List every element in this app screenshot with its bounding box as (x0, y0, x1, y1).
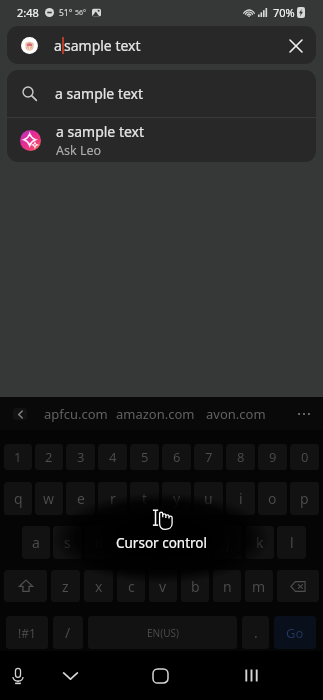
button[interactable]: amazon.com (116, 405, 195, 423)
button[interactable]: n (213, 570, 241, 602)
button[interactable]: z (51, 570, 80, 602)
button[interactable]: 1 (4, 444, 32, 470)
button[interactable]: r (98, 482, 127, 515)
button[interactable]: m (245, 570, 273, 602)
button[interactable]: q (4, 482, 32, 515)
button[interactable]: y (162, 482, 191, 515)
staticText: 9 (269, 448, 277, 466)
staticText: e (77, 489, 85, 508)
staticText: g (159, 533, 168, 552)
button[interactable]: 9 (258, 444, 287, 470)
staticText: h (191, 533, 200, 552)
staticText: 0 (301, 448, 309, 466)
staticText: a sample text (56, 122, 145, 141)
staticText: v (159, 577, 167, 596)
button[interactable]: 6 (162, 444, 191, 470)
staticText: o (268, 489, 277, 508)
button[interactable]: EN(US) (88, 616, 237, 649)
button[interactable]: f (117, 526, 146, 559)
button[interactable]: a sample text (7, 118, 316, 162)
staticText: 2:48 (17, 5, 39, 20)
staticText: Go (286, 624, 304, 642)
staticText: f (129, 533, 134, 552)
button[interactable]: u (194, 482, 223, 515)
button[interactable]: h (181, 526, 210, 559)
button[interactable]: e (66, 482, 95, 515)
button[interactable]: avon.com (206, 405, 266, 423)
button[interactable]: o (258, 482, 287, 515)
button[interactable]: / (53, 616, 83, 649)
button[interactable]: More options (291, 397, 317, 430)
button[interactable]: p (290, 482, 319, 515)
button[interactable]: x (84, 570, 113, 602)
staticText: z (62, 577, 69, 596)
staticText: 56° (75, 8, 87, 18)
button[interactable]: v (149, 570, 177, 602)
button[interactable]: Backspace (277, 570, 319, 602)
button[interactable]: a sample text (7, 70, 316, 117)
staticText: Cursor control (116, 534, 207, 552)
staticText: p (300, 489, 309, 508)
button[interactable]: Clear search (277, 26, 315, 64)
button[interactable]: apfcu.com (44, 405, 108, 423)
staticText: q (14, 489, 23, 508)
staticText: sample text (64, 36, 141, 55)
button[interactable]: l (277, 526, 306, 559)
staticText: y (173, 489, 181, 508)
staticText: 1 (14, 448, 22, 466)
staticText: 4 (109, 448, 117, 466)
staticText: !#1 (18, 625, 36, 641)
staticText: s (64, 533, 71, 552)
button[interactable]: g (149, 526, 178, 559)
staticText: a sample text (55, 84, 144, 103)
button[interactable]: !#1 (6, 616, 48, 649)
staticText: . (254, 623, 258, 642)
button[interactable]: i (226, 482, 255, 515)
staticText: 2 (45, 448, 53, 466)
staticText: r (110, 489, 116, 508)
button[interactable]: c (117, 570, 145, 602)
staticText: b (191, 577, 200, 596)
button[interactable]: Shift (4, 570, 47, 602)
button[interactable]: Home (138, 651, 182, 700)
button[interactable]: 2 (35, 444, 63, 470)
button[interactable]: s (53, 526, 82, 559)
staticText: x (95, 577, 103, 596)
staticText: EN(US) (147, 626, 179, 640)
button[interactable]: Recent apps (229, 651, 273, 700)
button[interactable]: a (22, 526, 50, 559)
button[interactable]: a (7, 26, 316, 64)
button[interactable]: t (130, 482, 159, 515)
button[interactable]: 8 (226, 444, 255, 470)
staticText: m (252, 577, 266, 596)
button[interactable]: Go (274, 616, 316, 649)
staticText: 7 (205, 448, 213, 466)
staticText: n (223, 577, 232, 596)
staticText: 5 (141, 448, 149, 466)
button[interactable]: Voice input (0, 651, 36, 700)
button[interactable]: k (245, 526, 274, 559)
button[interactable]: w (35, 482, 63, 515)
staticText: / (65, 623, 71, 642)
button[interactable]: b (181, 570, 209, 602)
staticText: 6 (173, 448, 181, 466)
button[interactable]: 4 (98, 444, 127, 470)
button[interactable]: 7 (194, 444, 223, 470)
staticText: k (256, 533, 264, 552)
button[interactable]: 3 (66, 444, 95, 470)
button[interactable]: 0 (290, 444, 319, 470)
staticText: a (32, 533, 40, 552)
staticText: l (290, 533, 294, 552)
button[interactable]: Back (48, 651, 92, 700)
staticText: 51° (59, 7, 73, 19)
button[interactable]: 5 (130, 444, 159, 470)
staticText: w (43, 489, 55, 508)
button[interactable]: Previous suggestions (13, 408, 27, 420)
staticText: t (142, 489, 148, 508)
staticText: i (239, 489, 243, 508)
